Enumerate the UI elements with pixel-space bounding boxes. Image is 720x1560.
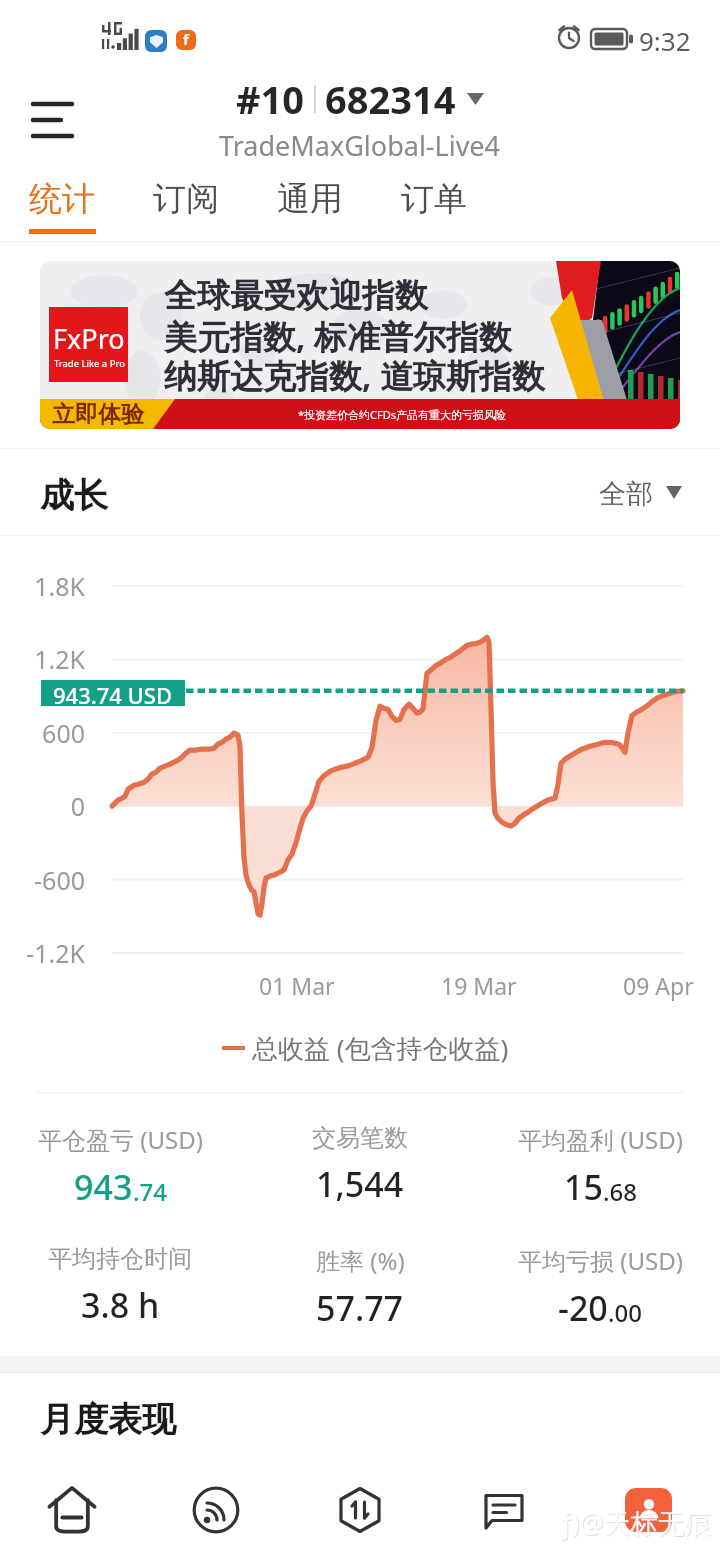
staticText: 统计 <box>29 178 95 220</box>
staticText: 月度表现 <box>40 1398 176 1441</box>
staticText: 成长 <box>40 474 108 517</box>
staticText: 订阅 <box>153 178 219 220</box>
staticText: FxPro <box>53 320 125 357</box>
staticText: 1.2K <box>0 642 85 676</box>
button[interactable]: 全部 <box>599 475 682 509</box>
staticText: *投资差价合约CFDs产品有重大的亏损风险 <box>298 407 507 422</box>
staticText: 682314 <box>325 73 456 125</box>
staticText: ƒ)@天标无痕 <box>560 1504 712 1541</box>
button[interactable]: 统计 <box>29 170 153 241</box>
staticText: 平仓盈亏 (USD) <box>38 1123 203 1156</box>
staticText: 平均持仓时间 <box>48 1244 192 1274</box>
staticText: 纳斯达克指数, 道琼斯指数 <box>164 353 545 398</box>
staticText: 01 Mar <box>259 970 335 1001</box>
button[interactable]: Messages <box>432 1459 576 1560</box>
staticText: f <box>183 30 189 49</box>
button[interactable]: 通用 <box>277 170 401 241</box>
staticText: .00 <box>608 1296 642 1329</box>
staticText: 19 Mar <box>441 970 517 1001</box>
button[interactable]: Signals <box>144 1459 288 1560</box>
staticText: 57.77 <box>316 1285 404 1331</box>
staticText: 09 Apr <box>623 970 694 1001</box>
button[interactable]: FxPro <box>40 261 680 429</box>
staticText: -1.2K <box>0 936 85 970</box>
staticText: 1,544 <box>316 1161 404 1207</box>
button[interactable]: 订单 <box>401 170 525 241</box>
staticText: 全球最受欢迎指数 <box>164 275 428 317</box>
staticText: .68 <box>603 1175 637 1208</box>
staticText: 平均盈利 (USD) <box>518 1123 683 1156</box>
staticText: 总收益 (包含持仓收益) <box>252 1030 509 1066</box>
staticText: Trade Like a Pro <box>54 357 125 370</box>
staticText: 胜率 (%) <box>316 1244 405 1277</box>
staticText: 全部 <box>599 477 653 511</box>
staticText: .74 <box>133 1175 167 1208</box>
staticText: 943.74 USD <box>53 680 173 706</box>
button[interactable]: Menu <box>13 80 93 160</box>
staticText: 15 <box>564 1164 603 1210</box>
staticText: TradeMaxGlobal-Live4 <box>219 127 501 164</box>
staticText: 0 <box>0 789 85 823</box>
staticText: 订单 <box>401 178 467 220</box>
staticText: ƒ)@天标无痕 <box>561 1505 713 1542</box>
staticText: 943 <box>74 1164 133 1210</box>
staticText: 立即体验 <box>52 400 144 429</box>
button[interactable]: Profile <box>576 1459 720 1560</box>
button[interactable]: Home <box>0 1459 144 1560</box>
staticText: 600 <box>0 716 85 750</box>
staticText: #10 <box>236 73 305 125</box>
button[interactable]: 订阅 <box>153 170 277 241</box>
staticText: 美元指数, 标准普尔指数 <box>164 314 512 359</box>
staticText: 1.8K <box>0 569 85 603</box>
staticText: 3.8 h <box>81 1282 160 1328</box>
staticText: 通用 <box>277 178 343 220</box>
staticText: 9:32 <box>639 23 691 58</box>
staticText: -20 <box>558 1285 608 1331</box>
staticText: 交易笔数 <box>312 1123 408 1153</box>
staticText: -600 <box>0 863 85 897</box>
staticText: 平均亏损 (USD) <box>518 1244 683 1277</box>
button[interactable]: Trade <box>288 1459 432 1560</box>
